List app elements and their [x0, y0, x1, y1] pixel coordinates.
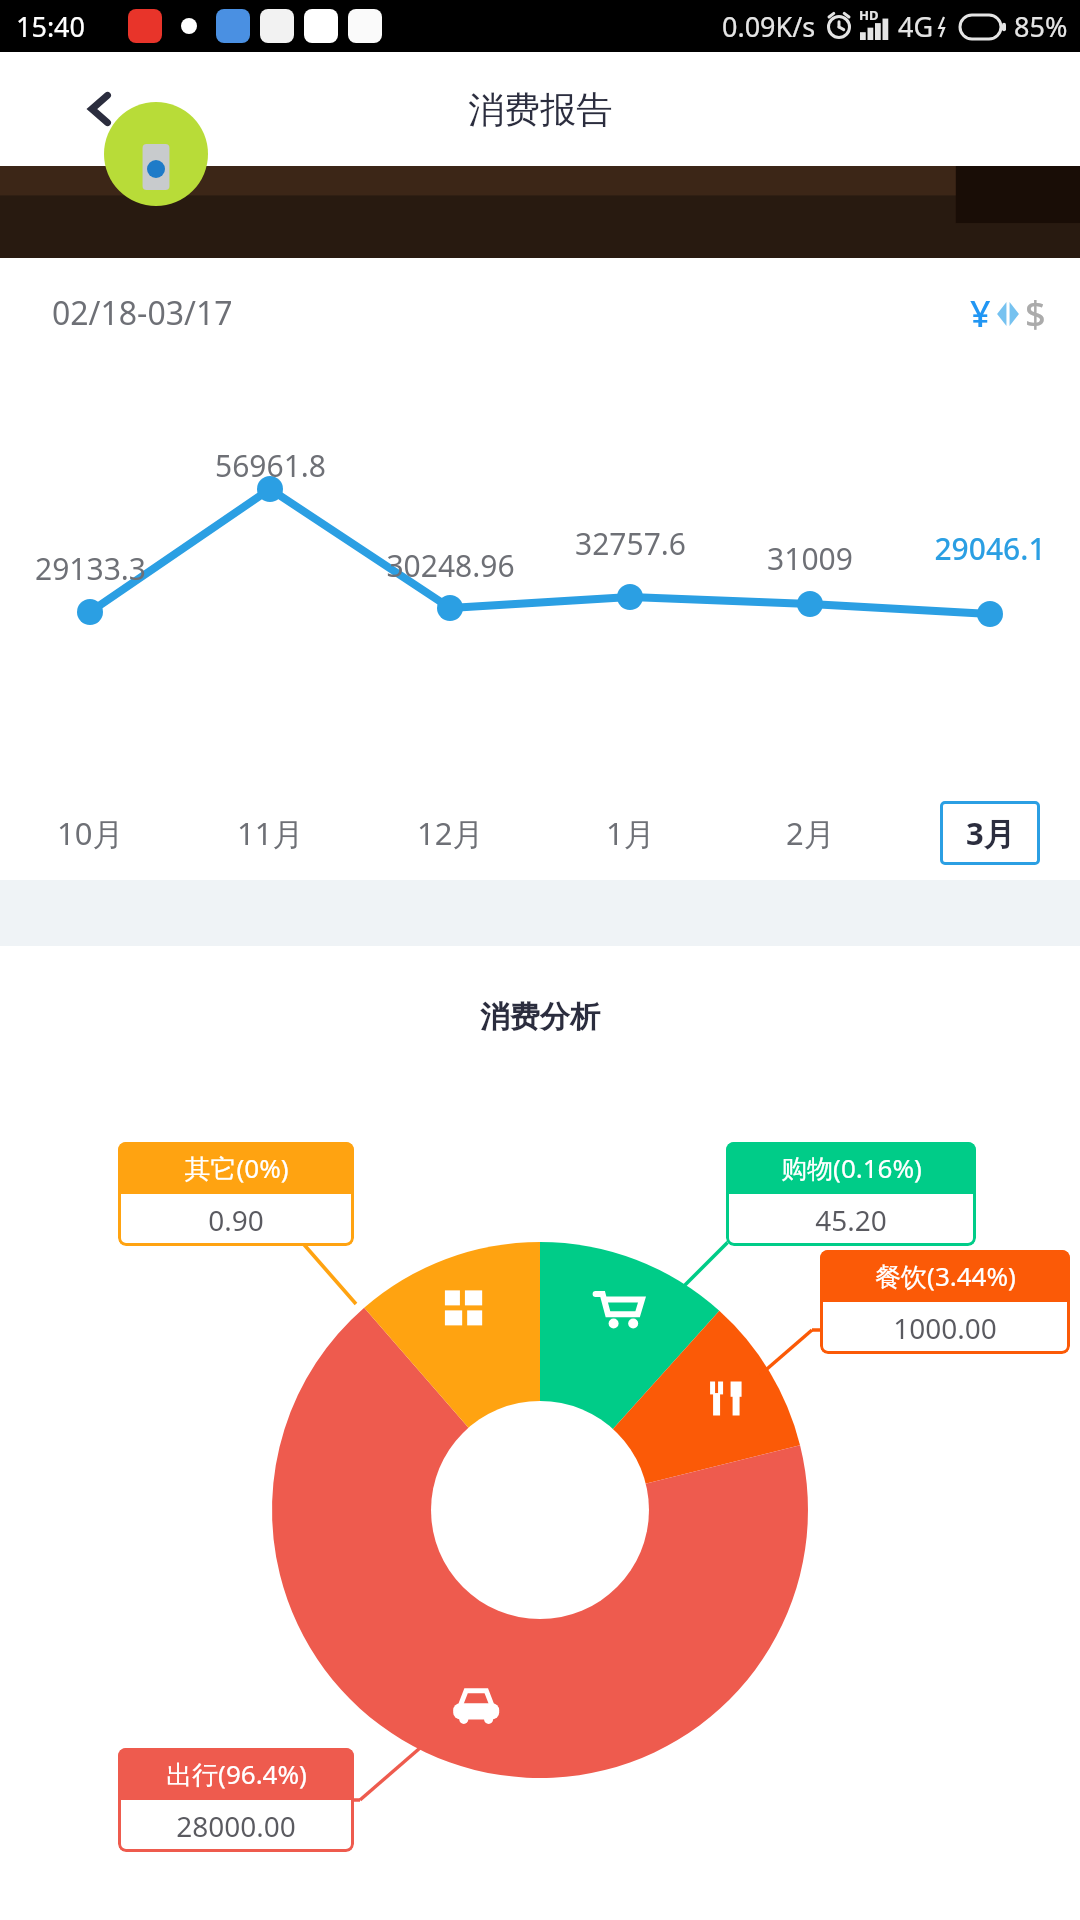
button[interactable]: 购物(0.16%): [726, 1142, 976, 1246]
button[interactable]: 1月: [580, 801, 680, 865]
staticText: 28000.00: [176, 1807, 296, 1845]
staticText: 12月: [417, 812, 484, 854]
staticText: 32757.6: [575, 523, 686, 564]
staticText: 1000.00: [893, 1309, 997, 1347]
staticText: 消费报告: [468, 87, 612, 132]
staticText: 购物(0.16%): [781, 1150, 922, 1186]
staticText: 11月: [237, 812, 304, 854]
staticText: 1月: [606, 812, 655, 854]
staticText: 4G: [898, 8, 934, 45]
staticText: 31009: [767, 538, 853, 579]
staticText: 2月: [786, 812, 835, 854]
staticText: 45.20: [815, 1201, 887, 1239]
staticText: 0.09K/s: [722, 8, 816, 45]
button[interactable]: 10月: [40, 801, 140, 865]
button[interactable]: 12月: [400, 801, 500, 865]
staticText: ¥: [970, 289, 991, 338]
staticText: 出行(96.4%): [166, 1756, 307, 1792]
button[interactable]: 餐饮(3.44%): [820, 1250, 1070, 1354]
button[interactable]: 其它(0%): [118, 1142, 354, 1246]
staticText: 56961.8: [215, 445, 326, 486]
staticText: 0.90: [208, 1201, 264, 1239]
button[interactable]: 出行(96.4%): [118, 1748, 354, 1852]
staticText: 15:40: [16, 8, 86, 45]
staticText: 02/18-03/17: [52, 291, 233, 335]
button[interactable]: ¥: [964, 279, 1052, 348]
staticText: 3月: [966, 812, 1015, 854]
staticText: 其它(0%): [184, 1150, 289, 1186]
staticText: 10月: [57, 812, 124, 854]
button[interactable]: Back: [60, 69, 140, 149]
staticText: 消费分析: [0, 998, 1080, 1036]
button[interactable]: 2月: [760, 801, 860, 865]
staticText: 29046.1: [934, 528, 1046, 569]
staticText: $: [1025, 289, 1046, 338]
button[interactable]: 3月: [940, 801, 1040, 865]
staticText: 30248.96: [386, 545, 515, 586]
button[interactable]: 11月: [220, 801, 320, 865]
staticText: 餐饮(3.44%): [875, 1258, 1016, 1294]
staticText: 85%: [1014, 8, 1068, 45]
staticText: HD: [859, 6, 879, 24]
staticText: 29133.3: [35, 548, 146, 589]
